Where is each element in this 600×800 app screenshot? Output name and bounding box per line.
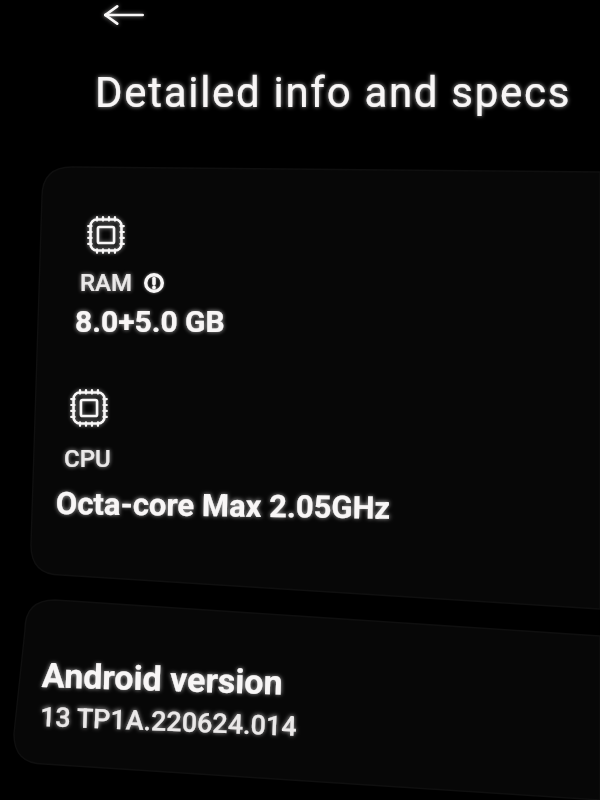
staticText: CPU xyxy=(64,445,111,473)
button[interactable]: Back xyxy=(98,0,150,36)
staticText: RAM xyxy=(80,269,133,297)
staticText: 8.0+5.0 GB xyxy=(75,304,225,339)
staticText: Octa-core Max 2.05GHz xyxy=(56,485,391,526)
staticText: 8.0+5.0 GB xyxy=(75,304,225,339)
staticText: Android version xyxy=(41,655,283,703)
staticText: Detailed info and specs xyxy=(95,68,572,117)
button[interactable] xyxy=(40,168,600,580)
staticText: 13 TP1A.220624.014 xyxy=(39,701,297,743)
staticText: Android version xyxy=(41,655,283,703)
staticText: CPU xyxy=(64,445,111,473)
staticText: 13 TP1A.220624.014 xyxy=(39,701,297,743)
button[interactable] xyxy=(22,601,600,781)
staticText: RAM xyxy=(80,269,133,297)
staticText: Detailed info and specs xyxy=(95,68,572,117)
staticText: Octa-core Max 2.05GHz xyxy=(56,485,391,526)
